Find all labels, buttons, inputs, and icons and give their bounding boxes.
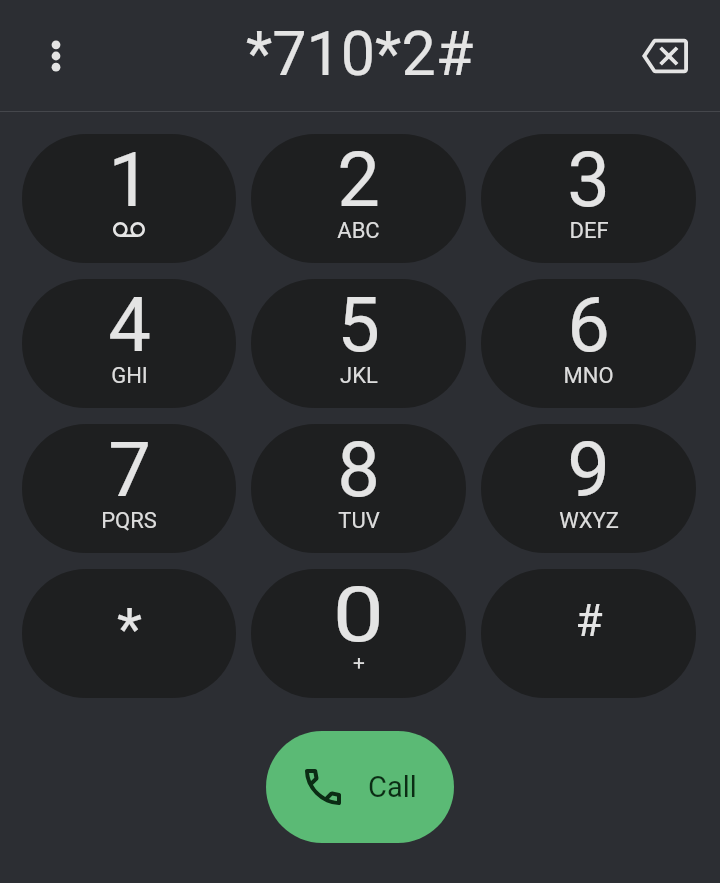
button[interactable]: 6 [481,279,696,408]
staticText: WXYZ [559,508,619,534]
staticText: 7 [108,425,151,514]
staticText: 4 [108,280,151,369]
staticText: 1 [108,135,151,224]
staticText: ABC [337,218,380,244]
staticText: DEF [569,218,609,244]
staticText: 0 [333,570,384,659]
staticText: + [353,651,365,676]
staticText: 9 [567,425,610,514]
button[interactable]: * [22,569,236,698]
button[interactable]: 9 [481,424,696,553]
staticText: PQRS [101,508,157,534]
button[interactable]: 4 [22,279,236,408]
button[interactable]: Backspace [629,20,701,92]
button[interactable]: 3 [481,134,696,263]
staticText: GHI [111,363,148,389]
staticText: # [575,595,603,647]
button[interactable]: Call [266,731,454,843]
button[interactable]: 7 [22,424,236,553]
staticText: * [117,595,142,663]
staticText: 6 [567,280,610,369]
staticText: TUV [338,508,380,534]
staticText: 2 [337,135,380,224]
button[interactable]: 8 [251,424,466,553]
button[interactable]: # [481,569,696,698]
staticText: 5 [337,280,380,369]
staticText: 8 [337,425,380,514]
staticText: MNO [563,363,614,389]
button[interactable]: More options [20,20,92,92]
button[interactable]: 1 [22,134,236,263]
button[interactable]: 5 [251,279,466,408]
staticText: *710*2# [246,18,474,89]
button[interactable]: 0 [251,569,466,698]
button[interactable]: 2 [251,134,466,263]
staticText: JKL [340,363,378,389]
staticText: Call [368,770,417,804]
staticText: 3 [567,135,610,224]
